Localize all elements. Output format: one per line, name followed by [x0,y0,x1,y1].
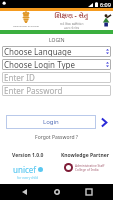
button[interactable]: Choose Language [2,46,111,57]
staticText: LOGIN [49,37,65,44]
staticText: Enter ID [4,72,35,83]
button[interactable]: Recent apps [81,184,97,200]
staticText: Government of Gujarat [13,24,39,27]
staticText: 6:09 [100,1,111,8]
staticText: જ્ઞાન નો સેતુ [64,26,79,29]
staticText: Choose Language [4,46,72,57]
staticText: સર્વ શિક્ષા અભિયાન [60,22,84,26]
button[interactable]: Enter ID [2,72,111,83]
button[interactable]: Enter Password [2,85,111,96]
button[interactable]: Login [6,115,96,129]
staticText: શિક્ષણ - સેતુ [54,10,89,22]
button[interactable]: Submit login [96,115,111,129]
staticText: Knowledge Partner [61,152,109,159]
staticText: Login [43,118,59,126]
button[interactable]: Home [49,184,65,200]
staticText: for every child [17,176,39,180]
button[interactable]: Back [16,184,32,200]
staticText: Version 1.0.0 [12,152,44,159]
staticText: College of India [75,168,99,172]
button[interactable]: Choose Login Type [2,59,111,70]
staticText: Administrative Staff [75,164,105,168]
button[interactable]: Forgot Password ? [2,134,111,141]
staticText: unicef [13,164,37,175]
staticText: Enter Password [4,85,63,96]
staticText: Choose Login Type [4,59,75,70]
